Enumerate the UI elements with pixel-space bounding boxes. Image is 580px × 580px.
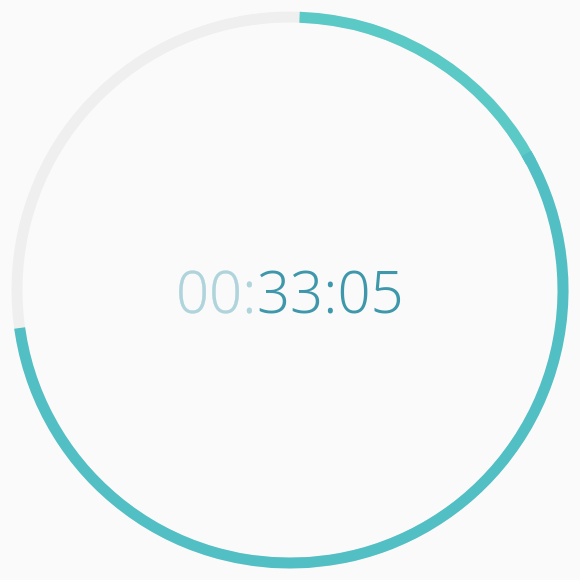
button[interactable]: Stopwatch <box>0 0 580 580</box>
staticText: 00: <box>176 251 257 330</box>
staticText: 33:05 <box>257 251 404 330</box>
